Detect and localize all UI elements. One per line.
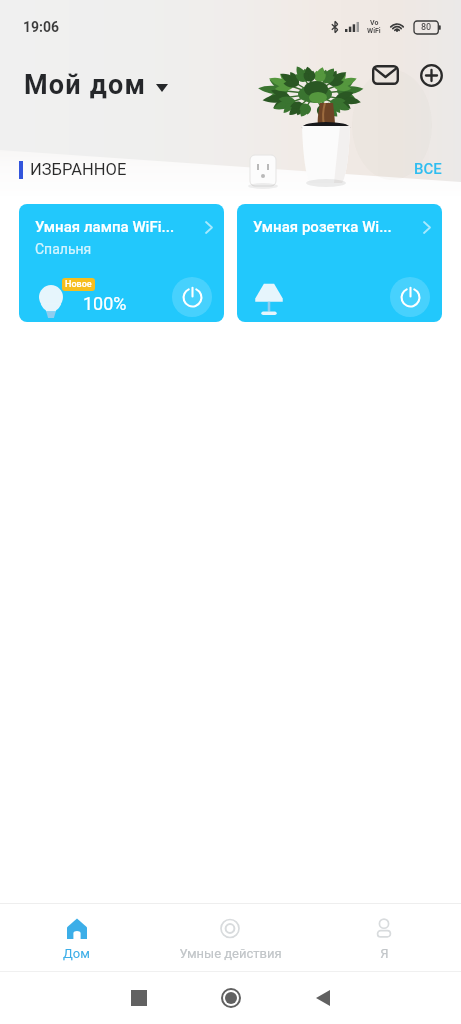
staticText: Дом [63, 946, 90, 961]
staticText: Умная розетка Wi... [253, 218, 420, 236]
button[interactable]: Recents [122, 981, 156, 1015]
button[interactable]: Home [214, 981, 248, 1015]
button[interactable]: Мой дом [0, 63, 178, 107]
staticText: 19:06 [23, 19, 60, 35]
staticText: Vo [370, 19, 379, 27]
button[interactable]: Умная лампа WiFi... [19, 204, 224, 322]
staticText: ВСЕ [414, 160, 442, 178]
button[interactable]: Power toggle [172, 277, 212, 317]
staticText: Новое [65, 279, 92, 290]
staticText: Умные действия [179, 946, 282, 961]
staticText: Спальня [35, 241, 92, 257]
button[interactable]: Я [307, 904, 461, 971]
staticText: Умная лампа WiFi... [35, 218, 202, 236]
staticText: 100% [83, 293, 127, 314]
staticText: Мой дом [24, 69, 147, 101]
button[interactable]: Messages [362, 52, 408, 98]
staticText: WiFi [367, 27, 381, 35]
button[interactable]: Power toggle [390, 277, 430, 317]
staticText: ИЗБРАННОЕ [30, 160, 127, 179]
button[interactable]: Дом [0, 904, 153, 971]
button[interactable]: Add device [408, 52, 454, 98]
button[interactable]: Умная розетка Wi... [237, 204, 442, 322]
button[interactable]: Умные действия [153, 904, 307, 971]
button[interactable]: ВСЕ [400, 154, 461, 184]
staticText: 80 [421, 22, 432, 33]
staticText: Я [380, 946, 389, 961]
button[interactable]: Back [306, 981, 340, 1015]
